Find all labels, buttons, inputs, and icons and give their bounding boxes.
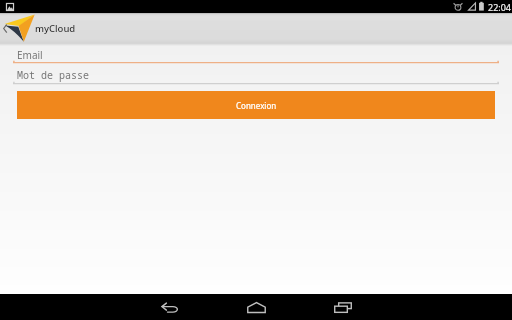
button[interactable]: Home xyxy=(213,294,299,320)
button[interactable]: Navigate up xyxy=(0,13,35,43)
staticText: myCloud xyxy=(35,22,76,35)
button[interactable]: Back xyxy=(127,294,213,320)
button[interactable]: Connexion xyxy=(17,91,495,119)
button[interactable]: Recent apps xyxy=(300,294,386,320)
staticText: Email xyxy=(17,48,43,62)
staticText: Mot de passe xyxy=(17,68,89,82)
button[interactable]: Mot de passe xyxy=(13,65,499,87)
button[interactable]: Email xyxy=(13,44,499,66)
staticText: Connexion xyxy=(236,100,277,111)
staticText: 22:04 xyxy=(488,1,512,13)
